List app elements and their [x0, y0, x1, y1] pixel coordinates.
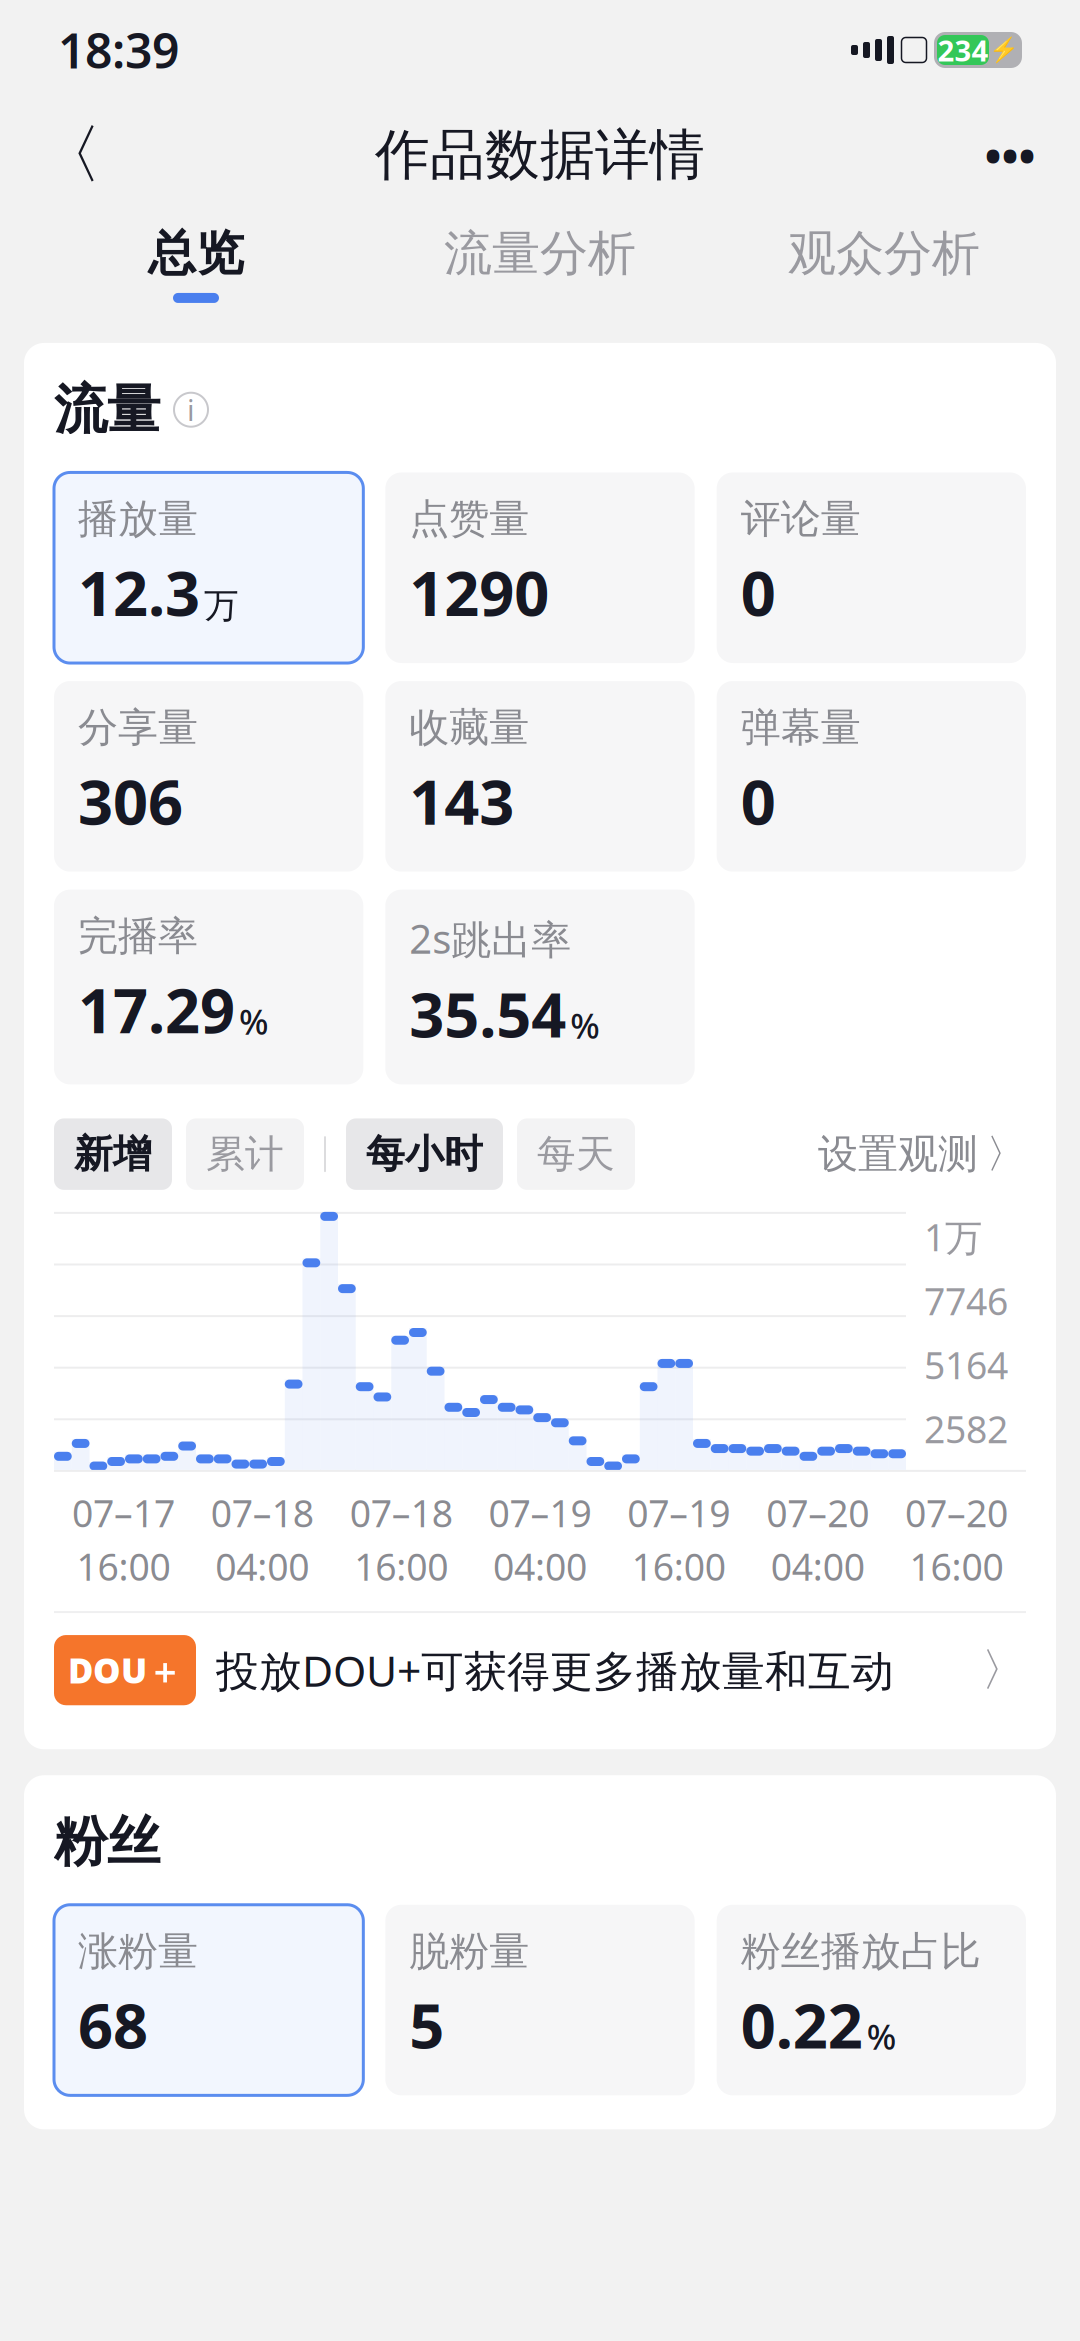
button[interactable]: 总览 — [24, 210, 368, 317]
staticText: 点赞量 — [409, 494, 529, 544]
staticText: 完播率 — [78, 912, 198, 961]
staticText: 16:00 — [354, 1541, 448, 1591]
staticText: 累计 — [206, 1130, 284, 1178]
button[interactable]: 收藏量 — [385, 681, 695, 872]
button[interactable]: 分享量 — [54, 681, 363, 872]
staticText: 收藏量 — [409, 703, 529, 752]
button[interactable]: 点赞量 — [385, 472, 695, 663]
staticText: 设置观测 — [818, 1130, 978, 1179]
staticText: DOU＋ — [68, 1647, 182, 1693]
staticText: 35.54 — [409, 973, 566, 1054]
staticText: % — [570, 1002, 600, 1048]
button[interactable]: 更多 — [970, 115, 1050, 195]
staticText: 总览 — [148, 224, 244, 283]
staticText: 粉丝播放占比 — [741, 1927, 981, 1976]
staticText: 07–20 — [766, 1488, 869, 1537]
staticText: 流量分析 — [444, 224, 636, 283]
staticText: 143 — [409, 760, 514, 842]
staticText: 观众分析 — [788, 224, 980, 283]
button[interactable]: 流量分析 — [368, 210, 712, 317]
button[interactable]: 完播率 — [54, 890, 363, 1084]
staticText: 2s跳出率 — [409, 912, 571, 965]
staticText: % — [867, 2013, 897, 2059]
button[interactable]: 每小时 — [346, 1118, 503, 1190]
button[interactable]: 涨粉量 — [54, 1905, 363, 2095]
staticText: 粉丝 — [54, 1809, 160, 1875]
staticText: 12.3 — [78, 552, 200, 633]
staticText: 5 — [409, 1984, 444, 2065]
staticText: 16:00 — [632, 1541, 726, 1591]
button[interactable]: 弹幕量 — [717, 681, 1026, 872]
staticText: i — [187, 390, 195, 429]
staticText: 07–19 — [627, 1488, 730, 1537]
staticText: 脱粉量 — [409, 1927, 529, 1976]
staticText: 04:00 — [771, 1541, 865, 1591]
staticText: 18:39 — [58, 18, 179, 82]
staticText: 每天 — [537, 1130, 615, 1178]
button[interactable]: 2s跳出率 — [385, 890, 695, 1084]
staticText: 作品数据详情 — [375, 121, 705, 188]
button[interactable]: 新增 — [54, 1118, 172, 1190]
staticText: 评论量 — [741, 494, 861, 544]
staticText: 07–19 — [488, 1488, 591, 1537]
staticText: 07–20 — [905, 1488, 1008, 1537]
staticText: 17.29 — [78, 969, 235, 1050]
button[interactable]: 每天 — [517, 1118, 635, 1190]
staticText: 1万 — [924, 1212, 982, 1261]
button[interactable]: 流量说明 — [174, 393, 208, 427]
staticText: 万 — [204, 584, 239, 627]
staticText: 每小时 — [366, 1130, 483, 1178]
button[interactable]: 粉丝播放占比 — [717, 1905, 1026, 2095]
button[interactable]: 设置观测 — [818, 1130, 1026, 1179]
staticText: 0 — [741, 552, 776, 633]
staticText: 〉 — [981, 1642, 1026, 1698]
button[interactable]: DOU＋ — [54, 1625, 1026, 1715]
button[interactable]: 累计 — [186, 1118, 304, 1190]
staticText: 新增 — [74, 1130, 152, 1178]
staticText: 07–18 — [350, 1488, 453, 1537]
staticText: 7746 — [924, 1276, 1008, 1325]
staticText: 234 — [937, 30, 988, 69]
staticText: 04:00 — [493, 1541, 587, 1591]
staticText: 2582 — [924, 1404, 1008, 1453]
staticText: 16:00 — [76, 1541, 170, 1591]
staticText: 68 — [78, 1984, 148, 2065]
button[interactable]: 评论量 — [717, 472, 1026, 663]
staticText: 306 — [78, 760, 183, 842]
staticText: 〉 — [986, 1130, 1026, 1179]
staticText: ⚡ — [989, 36, 1019, 64]
staticText: 04:00 — [215, 1541, 309, 1591]
staticText: 07–17 — [72, 1488, 175, 1537]
staticText: % — [239, 998, 269, 1044]
staticText: 〈 — [38, 116, 102, 194]
staticText: 弹幕量 — [741, 703, 861, 752]
staticText: 流量 — [54, 377, 160, 442]
button[interactable]: 返回 — [30, 115, 110, 195]
staticText: 07–18 — [211, 1488, 314, 1537]
staticText: 播放量 — [78, 494, 198, 544]
staticText: 5164 — [924, 1340, 1008, 1389]
staticText: 0 — [741, 760, 776, 842]
staticText: 16:00 — [910, 1541, 1004, 1591]
staticText: 1290 — [409, 552, 549, 633]
staticText: 投放DOU+可获得更多播放量和互动 — [216, 1642, 894, 1698]
staticText: 涨粉量 — [78, 1927, 198, 1976]
button[interactable]: 脱粉量 — [385, 1905, 695, 2095]
button[interactable]: 播放量 — [54, 472, 363, 663]
staticText: 0.22 — [741, 1984, 863, 2065]
staticText: 分享量 — [78, 703, 198, 752]
staticText: ••• — [984, 125, 1035, 185]
button[interactable]: 观众分析 — [712, 210, 1056, 317]
